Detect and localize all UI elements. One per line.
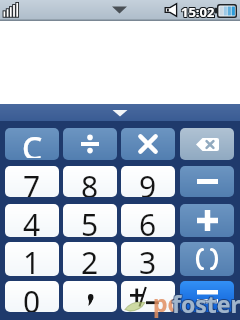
staticText: 15:02: [180, 4, 214, 22]
staticText: 1: [23, 242, 41, 276]
staticText: 5: [81, 204, 99, 237]
button[interactable]: [121, 128, 175, 160]
staticText: 15:02: [181, 2, 215, 20]
button[interactable]: [180, 281, 234, 312]
staticText: C: [22, 128, 43, 158]
staticText: 15:02: [181, 4, 215, 22]
button[interactable]: 5: [63, 204, 117, 237]
staticText: 6: [139, 204, 157, 237]
button[interactable]: 7: [5, 166, 59, 197]
staticText: 9: [139, 166, 157, 197]
button[interactable]: C: [5, 128, 59, 160]
staticText: foster: [172, 288, 240, 319]
button[interactable]: 1: [5, 242, 59, 276]
button[interactable]: 0: [5, 281, 59, 312]
button[interactable]: [63, 128, 117, 160]
button[interactable]: 2: [63, 242, 117, 276]
staticText: 15:02: [181, 3, 215, 21]
staticText: 15:02: [182, 3, 216, 21]
staticText: 2: [81, 242, 99, 276]
button[interactable]: 8: [63, 166, 117, 197]
staticText: 0: [23, 281, 41, 312]
staticText: foster: [171, 287, 240, 318]
staticText: foster: [171, 289, 240, 320]
button[interactable]: 3: [121, 242, 175, 276]
staticText: 4: [23, 204, 41, 237]
button[interactable]: [121, 281, 175, 312]
staticText: 8: [81, 166, 99, 197]
button[interactable]: 4: [5, 204, 59, 237]
staticText: foster: [173, 287, 240, 318]
staticText: pc: [153, 287, 180, 318]
button[interactable]: 9: [121, 166, 175, 197]
staticText: 15:02: [182, 4, 216, 22]
staticText: 3: [139, 242, 157, 276]
button[interactable]: [180, 128, 234, 160]
staticText: 15:02: [180, 2, 214, 20]
button[interactable]: [180, 242, 234, 276]
button[interactable]: [63, 281, 117, 312]
button[interactable]: [180, 204, 234, 237]
staticText: 15:02: [182, 2, 216, 20]
staticText: 15:02: [180, 3, 214, 21]
button[interactable]: 6: [121, 204, 175, 237]
staticText: foster: [173, 289, 240, 320]
button[interactable]: [0, 104, 240, 121]
staticText: 7: [23, 166, 41, 197]
button[interactable]: [180, 166, 234, 197]
